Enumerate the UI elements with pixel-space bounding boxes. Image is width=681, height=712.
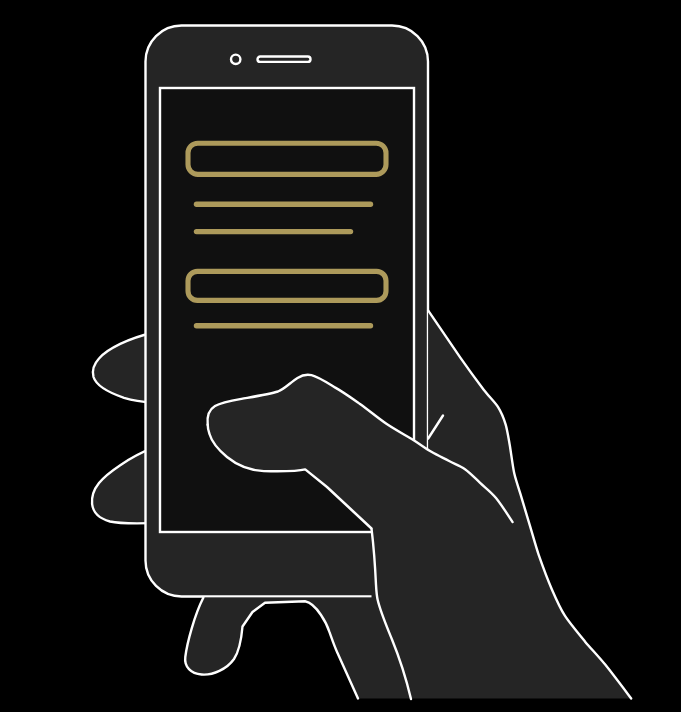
button[interactable]: Hand holding a phone illustration xyxy=(0,0,681,712)
